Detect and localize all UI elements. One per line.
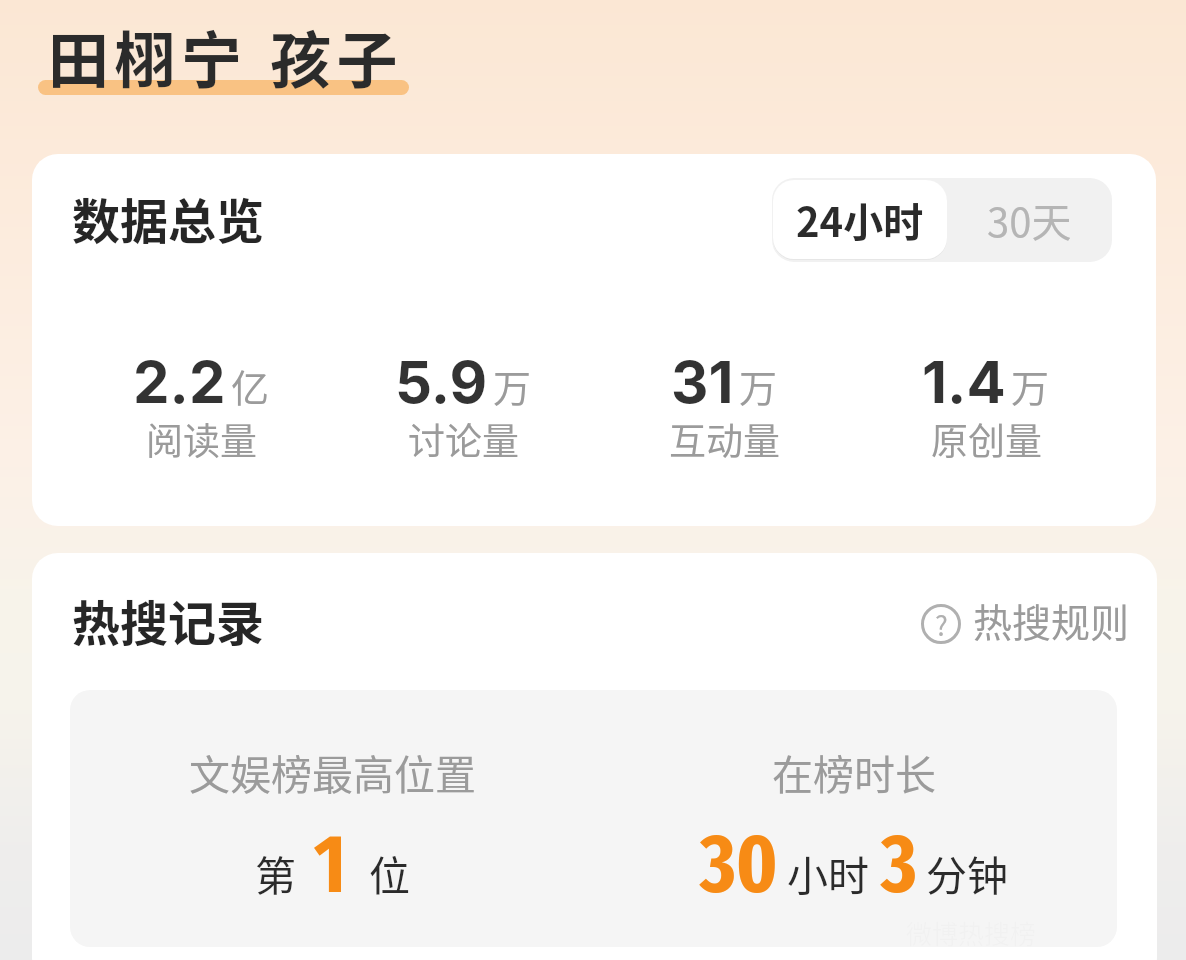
button[interactable]: 热搜规则 [920, 599, 1130, 655]
staticText: 热搜规则 [973, 592, 1130, 648]
staticText: 2.2 [133, 347, 226, 417]
button[interactable]: 5.9 [163, 347, 763, 475]
staticText: 热搜记录 [72, 585, 265, 655]
staticText: 田栩宁 [48, 12, 248, 100]
staticText: 讨论量 [408, 412, 519, 466]
staticText: 文娱榜最高位置 [189, 742, 476, 801]
staticText: 位 [369, 843, 410, 902]
staticText: 万 [739, 358, 778, 413]
staticText: 30 [700, 815, 778, 913]
staticText: 1.4 [922, 347, 1006, 417]
staticText: 阅读量 [146, 412, 257, 466]
staticText: 5.9 [395, 347, 488, 417]
button[interactable]: 30天 [947, 178, 1112, 262]
staticText: ? [935, 605, 948, 644]
staticText: 万 [1011, 358, 1050, 413]
button[interactable]: 田栩宁 [36, 0, 414, 100]
staticText: 在榜时长 [772, 742, 936, 801]
staticText: 1 [314, 815, 347, 913]
button[interactable]: 31 [424, 347, 1024, 475]
staticText: 分钟 [926, 843, 1008, 902]
button[interactable]: 2.2 [32, 347, 501, 475]
staticText: 亿 [231, 358, 270, 413]
staticText: 原创量 [931, 412, 1042, 466]
staticText: 万 [493, 358, 532, 413]
button[interactable]: 24小时 [773, 180, 947, 259]
staticText: 小时 [787, 843, 869, 902]
staticText: 31 [671, 347, 734, 417]
staticText: 互动量 [669, 412, 780, 466]
button[interactable]: 1.4 [686, 347, 1156, 475]
staticText: 3 [881, 815, 917, 913]
staticText: 第 [255, 843, 296, 902]
staticText: 30天 [987, 191, 1072, 249]
other: 热搜规则 [920, 603, 962, 645]
staticText: 孩子 [270, 12, 403, 100]
staticText: 数据总览 [72, 183, 265, 253]
staticText: 24小时 [796, 191, 924, 249]
